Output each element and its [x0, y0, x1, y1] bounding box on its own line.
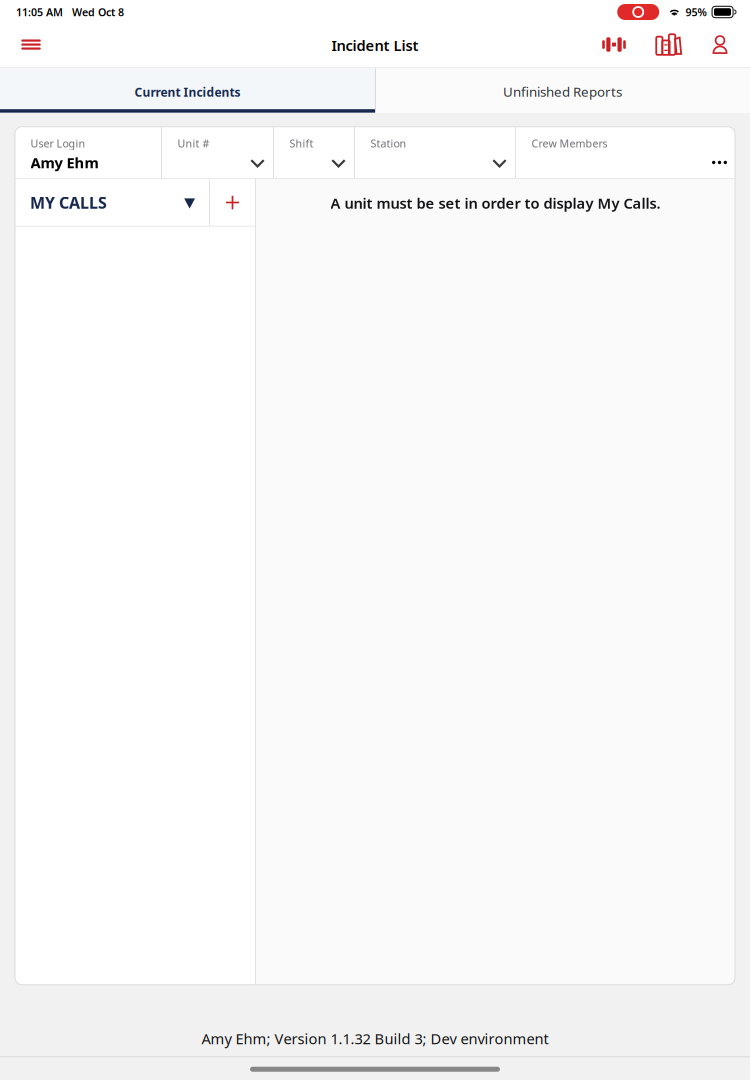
button[interactable]: MY CALLS [15, 179, 209, 226]
button[interactable]: Add call [210, 179, 255, 226]
button[interactable]: Profile [698, 28, 742, 67]
staticText: Current Incidents [134, 84, 240, 100]
button[interactable]: Current Incidents [0, 68, 375, 113]
staticText: Amy Ehm; Version 1.1.32 Build 3; Dev env… [201, 1029, 548, 1048]
button[interactable]: Workouts [592, 28, 636, 67]
staticText: Shift [289, 136, 313, 150]
staticText: Incident List [331, 35, 418, 55]
staticText: Wed Oct 8 [72, 5, 124, 19]
staticText: MY CALLS [30, 192, 107, 213]
button[interactable]: Menu [9, 28, 53, 67]
staticText: Crew Members [531, 136, 607, 150]
button[interactable]: User Login [15, 127, 161, 178]
staticText: Amy Ehm [30, 153, 98, 172]
staticText: 11:05 AM [16, 5, 63, 19]
staticText: User Login [30, 136, 85, 150]
button[interactable]: Station [355, 127, 515, 178]
staticText: Unfinished Reports [503, 83, 622, 100]
staticText: 95% [686, 5, 707, 19]
button[interactable]: Unfinished Reports [375, 68, 750, 113]
button[interactable]: Shift [274, 127, 354, 178]
staticText: Station [370, 136, 406, 150]
button[interactable]: Crew Members [516, 127, 735, 178]
staticText: Unit # [177, 136, 209, 150]
button[interactable]: Protocols [647, 28, 691, 67]
staticText: A unit must be set in order to display M… [330, 193, 660, 213]
button[interactable]: Unit # [162, 127, 273, 178]
